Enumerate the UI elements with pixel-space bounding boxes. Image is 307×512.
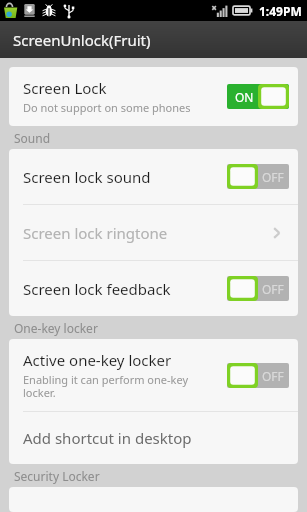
- button[interactable]: Screen lock on: [227, 84, 289, 109]
- staticText: ScreenUnlock(Fruit): [13, 30, 151, 50]
- staticText: Screen lock ringtone: [23, 223, 168, 243]
- button[interactable]: ScreenUnlock(Fruit): [0, 21, 307, 58]
- staticText: Screen Lock: [23, 78, 107, 98]
- staticText: Enabling it can perform one-key locker.: [23, 372, 189, 400]
- staticText: Screen lock sound: [23, 167, 151, 187]
- staticText: Active one-key locker: [23, 350, 172, 370]
- staticText: 1:49PM: [259, 3, 302, 19]
- button[interactable]: Screen lock ringtone: [9, 205, 298, 260]
- button[interactable]: Setting off: [227, 276, 289, 301]
- staticText: Do not support on some phones: [23, 100, 191, 115]
- staticText: ON: [235, 89, 254, 105]
- button[interactable]: Setting off: [227, 164, 289, 189]
- button[interactable]: Active one-key locker: [9, 339, 298, 411]
- staticText: Screen lock feedback: [23, 279, 171, 299]
- staticText: OFF: [262, 368, 284, 384]
- staticText: Security Locker: [14, 468, 100, 484]
- button[interactable]: Add shortcut in desktop: [9, 412, 298, 464]
- button[interactable]: Screen lock sound: [9, 149, 298, 204]
- staticText: OFF: [262, 281, 284, 297]
- button[interactable]: Choose ringtone: [265, 221, 289, 245]
- staticText: Sound: [14, 130, 51, 146]
- button[interactable]: Screen Lock: [9, 67, 298, 126]
- staticText: One-key locker: [14, 320, 98, 336]
- button[interactable]: Setting off: [227, 363, 289, 388]
- staticText: Add shortcut in desktop: [23, 428, 192, 448]
- button[interactable]: Screen lock feedback: [9, 261, 298, 316]
- staticText: OFF: [262, 169, 284, 185]
